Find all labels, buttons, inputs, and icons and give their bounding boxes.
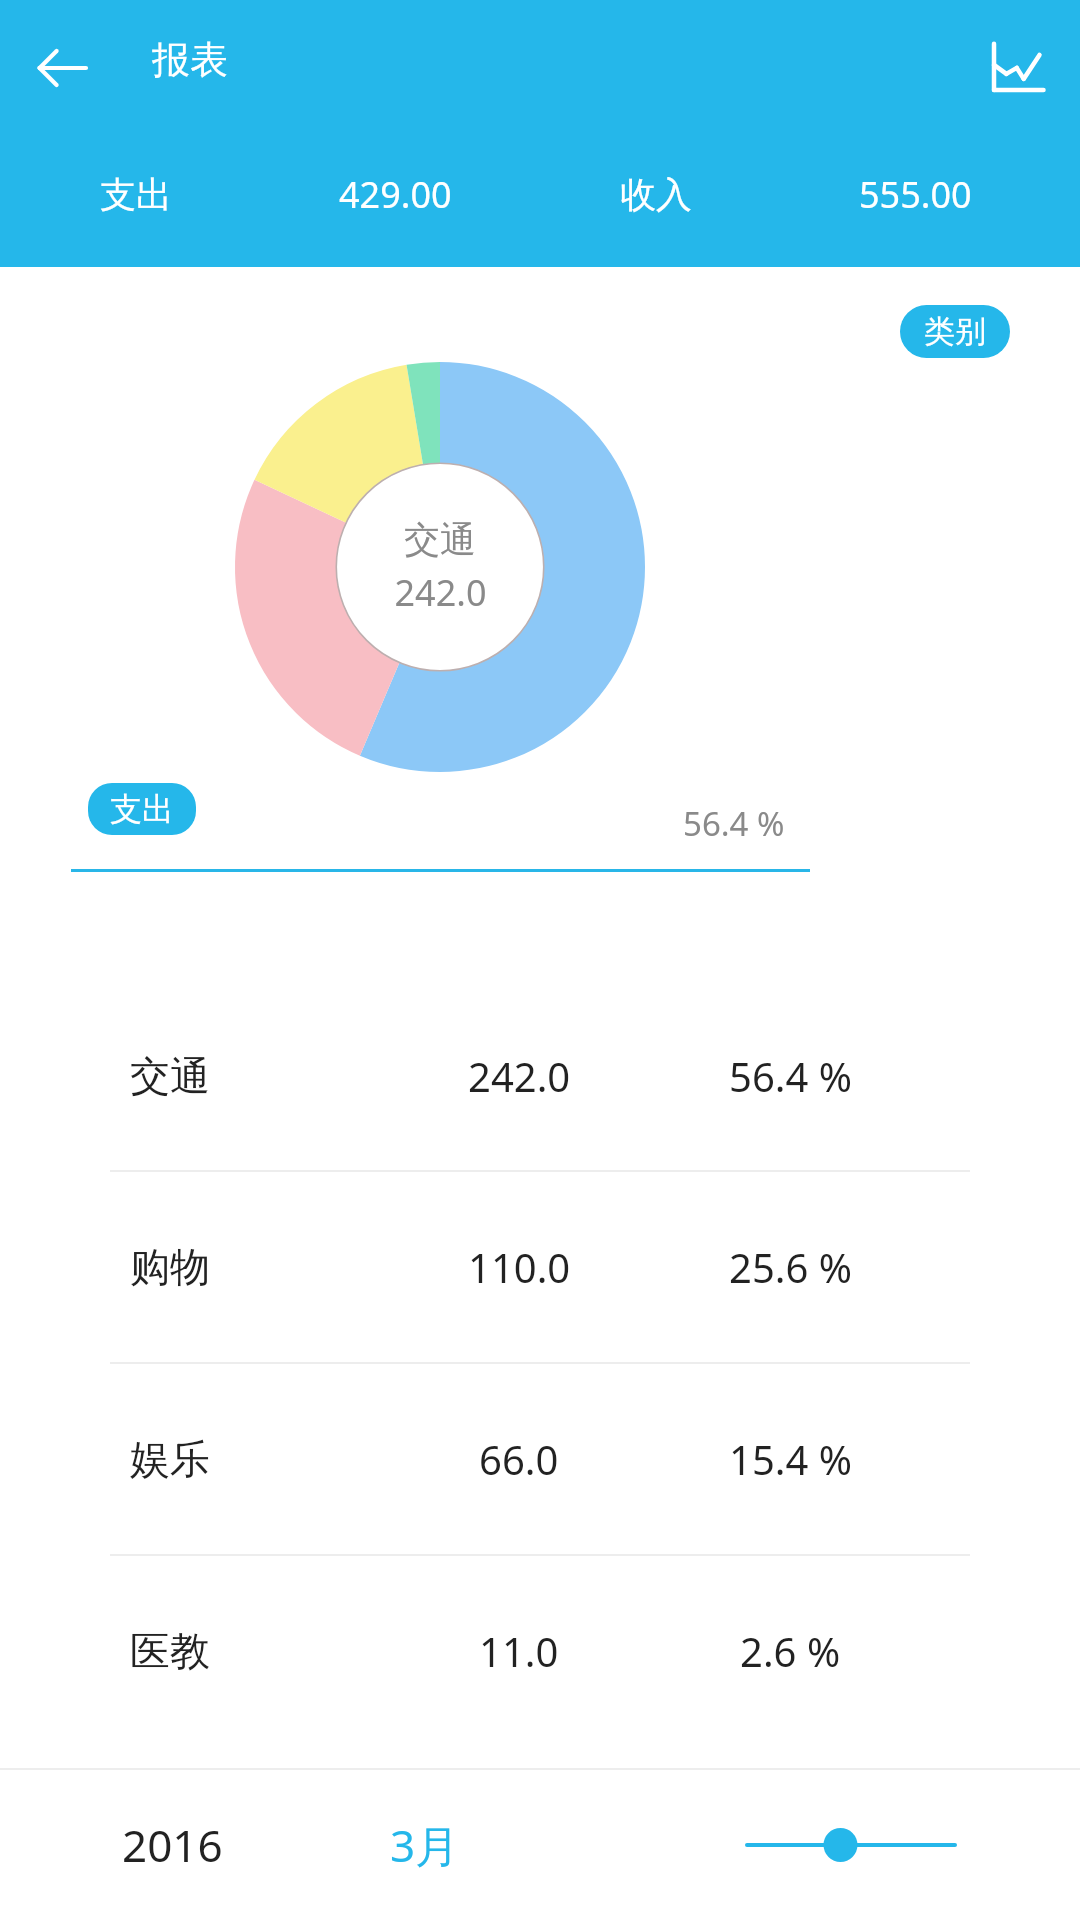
staticText: 2.6 %	[740, 1624, 841, 1678]
staticText: 交通	[130, 1051, 210, 1101]
staticText: 报表	[152, 36, 228, 84]
button[interactable]: Chart	[972, 24, 1060, 112]
staticText: 242.0	[468, 1049, 571, 1103]
button[interactable]: 购物	[0, 1172, 1080, 1362]
staticText: 25.6 %	[729, 1240, 852, 1294]
staticText: 56.4 %	[729, 1049, 852, 1103]
staticText: 66.0	[479, 1432, 559, 1486]
staticText: 555.00	[859, 170, 972, 219]
staticText: 支出	[110, 789, 174, 829]
staticText: 购物	[130, 1242, 210, 1292]
button[interactable]: 交通	[0, 982, 1080, 1170]
staticText: 交通	[404, 517, 476, 562]
button[interactable]: Month slider	[730, 1805, 990, 1885]
staticText: 支出	[100, 172, 172, 217]
staticText: 242.0	[394, 568, 487, 617]
button[interactable]: 娱乐	[0, 1364, 1080, 1554]
button[interactable]: 3月	[390, 1815, 460, 1875]
button[interactable]: 类别	[900, 305, 1010, 358]
staticText: 110.0	[468, 1240, 571, 1294]
button[interactable]: 支出	[88, 783, 196, 835]
staticText: 56.4 %	[683, 801, 785, 846]
staticText: 11.0	[479, 1624, 559, 1678]
staticText: 收入	[620, 172, 692, 217]
staticText: 15.4 %	[729, 1432, 852, 1486]
staticText: 类别	[924, 312, 986, 351]
staticText: 娱乐	[130, 1434, 210, 1484]
staticText: 429.00	[339, 170, 452, 219]
button[interactable]: Back	[22, 28, 102, 108]
staticText: 医教	[130, 1626, 210, 1676]
button[interactable]: 2016	[122, 1815, 223, 1875]
button[interactable]: 医教	[0, 1556, 1080, 1746]
